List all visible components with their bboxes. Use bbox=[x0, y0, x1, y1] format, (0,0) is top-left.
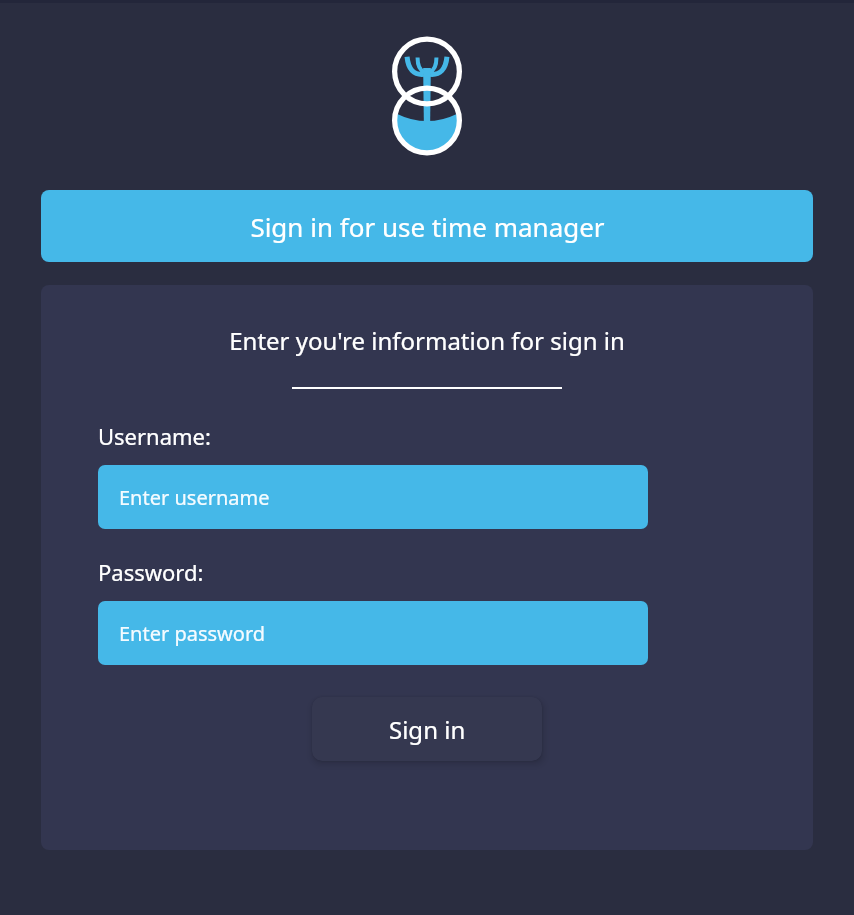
staticText: Sign in for use time manager bbox=[250, 209, 605, 244]
button[interactable]: Enter username bbox=[98, 465, 648, 529]
staticText: Enter password bbox=[119, 620, 266, 647]
button[interactable]: Sign in bbox=[312, 697, 542, 761]
staticText: Password: bbox=[98, 557, 204, 587]
button[interactable]: Enter password bbox=[98, 601, 648, 665]
button[interactable]: Sign in for use time manager bbox=[41, 190, 813, 262]
other: Time manager logo bbox=[392, 40, 462, 152]
staticText: Enter username bbox=[119, 484, 270, 511]
staticText: Sign in bbox=[389, 713, 466, 746]
staticText: Enter you're information for sign in bbox=[229, 324, 625, 357]
staticText: Username: bbox=[98, 421, 211, 451]
